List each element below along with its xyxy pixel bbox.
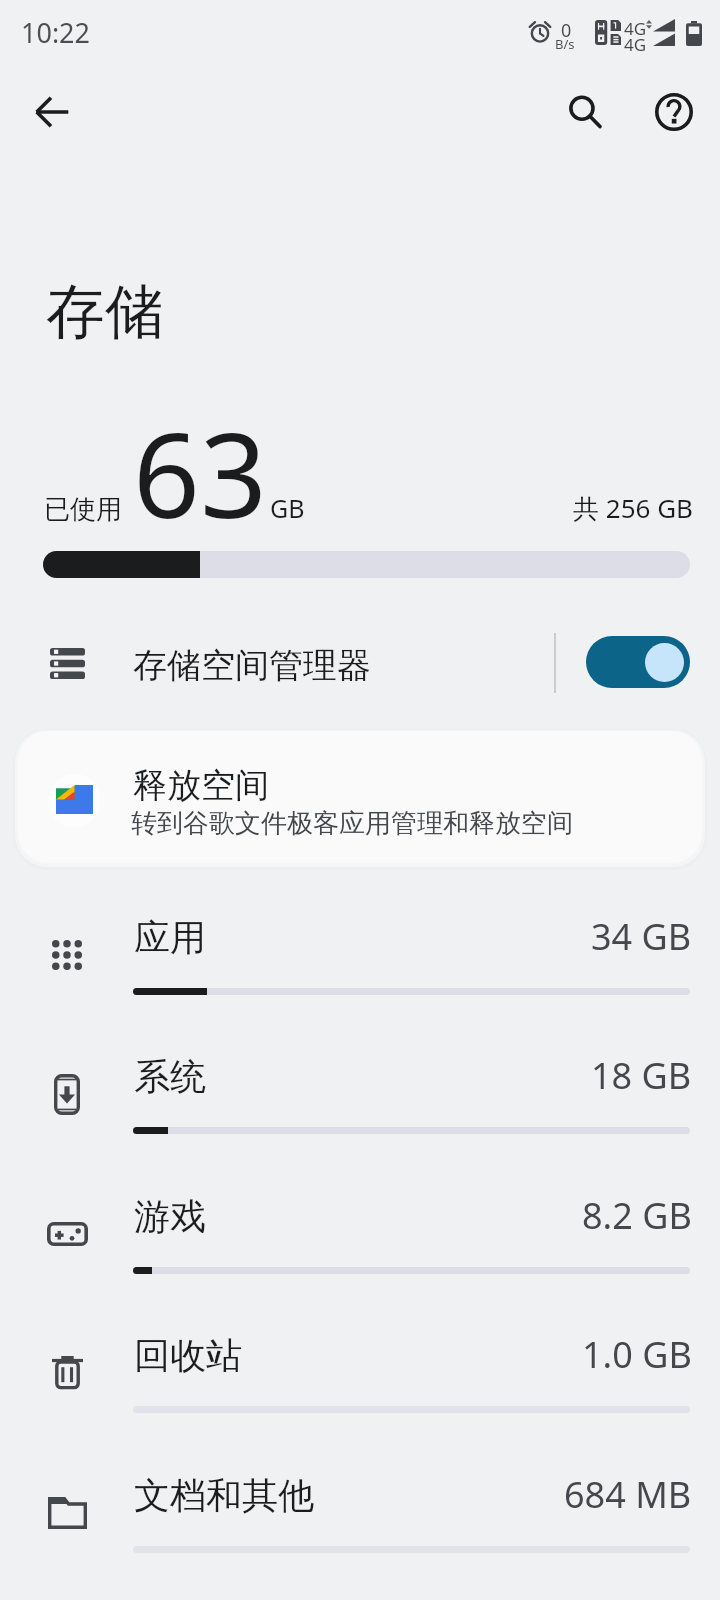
staticText: 4G	[624, 17, 647, 40]
button[interactable]: 释放空间	[18, 731, 702, 863]
staticText: 63	[133, 393, 267, 552]
button[interactable]: Search	[545, 72, 625, 152]
button[interactable]: Help	[634, 72, 714, 152]
button[interactable]: 存储空间管理器	[0, 622, 720, 708]
staticText: 684 MB	[564, 1470, 692, 1519]
staticText: 4G	[624, 33, 647, 56]
staticText: 回收站	[134, 1333, 242, 1378]
button[interactable]: Back	[12, 72, 92, 152]
staticText: 已使用	[44, 493, 122, 526]
staticText: 34 GB	[591, 912, 692, 961]
staticText: B/s	[555, 35, 575, 53]
button[interactable]: 系统	[0, 1022, 720, 1161]
button[interactable]: 文档和其他	[0, 1441, 720, 1580]
staticText: 存储空间管理器	[133, 644, 371, 687]
staticText: 18 GB	[591, 1051, 692, 1100]
staticText: 共 256 GB	[573, 490, 693, 526]
staticText: 8.2 GB	[582, 1191, 692, 1240]
staticText: 存储	[46, 275, 164, 349]
button[interactable]: Storage manager toggle	[586, 636, 690, 688]
button[interactable]: 回收站	[0, 1301, 720, 1440]
staticText: 转到谷歌文件极客应用管理和释放空间	[131, 807, 573, 840]
staticText: 0	[561, 18, 572, 43]
staticText: 系统	[134, 1054, 206, 1099]
staticText: 文档和其他	[134, 1473, 314, 1518]
staticText: 应用	[134, 915, 206, 960]
button[interactable]: 应用	[0, 883, 720, 1022]
staticText: 10:22	[21, 14, 91, 51]
button[interactable]: 游戏	[0, 1162, 720, 1301]
staticText: GB	[270, 491, 305, 525]
staticText: 1.0 GB	[582, 1330, 692, 1379]
staticText: 游戏	[134, 1194, 206, 1239]
staticText: 释放空间	[133, 764, 269, 807]
